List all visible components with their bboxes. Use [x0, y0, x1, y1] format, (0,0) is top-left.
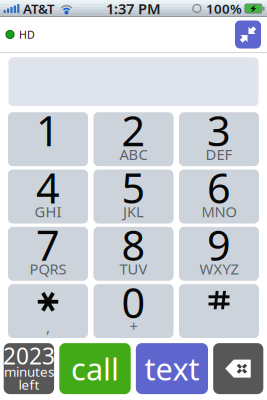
staticText: 5: [121, 160, 145, 215]
button[interactable]: 7: [8, 227, 88, 281]
button[interactable]: 6: [179, 169, 259, 223]
staticText: 6: [207, 160, 231, 215]
button[interactable]: 3: [179, 112, 259, 166]
staticText: HD: [19, 27, 35, 42]
button[interactable]: [179, 284, 259, 338]
staticText: JKL: [123, 202, 144, 221]
staticText: PQRS: [29, 259, 66, 279]
button[interactable]: 2023: [4, 343, 54, 394]
staticText: 9: [207, 217, 231, 272]
staticText: DEF: [205, 144, 232, 164]
staticText: 2023: [3, 340, 55, 371]
staticText: WXYZ: [199, 259, 238, 279]
button[interactable]: 8: [93, 227, 173, 281]
staticText: MNO: [201, 202, 236, 221]
staticText: AT&T: [23, 0, 55, 17]
staticText: 100%: [206, 0, 242, 17]
button[interactable]: 9: [179, 227, 259, 281]
staticText: minutes: [4, 363, 54, 380]
staticText: 8: [121, 217, 145, 272]
staticText: 2: [121, 103, 145, 158]
staticText: 3: [207, 103, 231, 158]
button[interactable]: Delete: [213, 343, 263, 394]
button[interactable]: call: [59, 343, 131, 394]
button[interactable]: text: [136, 343, 208, 394]
button[interactable]: 0: [93, 284, 173, 338]
staticText: left: [18, 376, 39, 393]
staticText: 1: [36, 103, 60, 158]
staticText: call: [71, 348, 119, 389]
staticText: ABC: [119, 144, 147, 164]
button[interactable]: Expand keypad: [235, 20, 261, 48]
button[interactable]: 2: [93, 112, 173, 166]
staticText: text: [144, 348, 199, 389]
staticText: TUV: [119, 259, 147, 279]
staticText: 7: [36, 217, 60, 272]
button[interactable]: 5: [93, 169, 173, 223]
staticText: ,: [46, 317, 50, 337]
staticText: 4: [36, 160, 60, 215]
staticText: 0: [121, 275, 145, 330]
button[interactable]: 1: [8, 112, 88, 166]
staticText: 1:37 PM: [106, 0, 161, 18]
staticText: GHI: [34, 202, 61, 221]
button[interactable]: ,: [8, 284, 88, 338]
staticText: +: [129, 316, 137, 336]
button[interactable]: 4: [8, 169, 88, 223]
